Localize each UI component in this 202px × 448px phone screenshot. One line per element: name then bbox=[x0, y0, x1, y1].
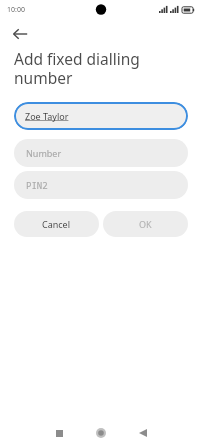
button[interactable]: Cancel bbox=[14, 211, 99, 237]
button[interactable]: Number bbox=[14, 139, 188, 167]
staticText: Zoe Taylor bbox=[25, 110, 69, 122]
button[interactable]: Recents bbox=[47, 421, 71, 445]
staticText: Add fixed dialling number bbox=[14, 48, 140, 88]
button[interactable]: PIN2 bbox=[14, 171, 188, 199]
staticText: 10:00 bbox=[7, 5, 25, 15]
button[interactable]: Back bbox=[131, 421, 155, 445]
staticText: OK bbox=[139, 218, 152, 230]
button[interactable]: Home bbox=[89, 421, 113, 445]
button[interactable]: Back bbox=[8, 22, 32, 46]
staticText: PIN2 bbox=[26, 179, 48, 191]
button[interactable]: Zoe Taylor bbox=[14, 102, 188, 130]
staticText: Cancel bbox=[42, 218, 71, 230]
button[interactable]: OK bbox=[103, 211, 188, 237]
staticText: Number bbox=[26, 147, 62, 159]
